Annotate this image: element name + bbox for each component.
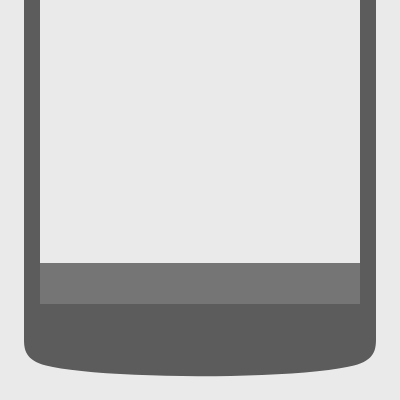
button[interactable]: Phone device illustration xyxy=(0,0,400,400)
